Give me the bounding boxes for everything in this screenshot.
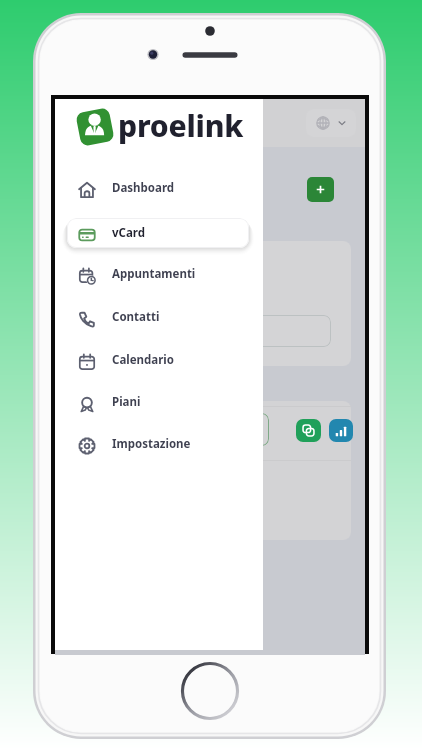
button[interactable]: Copy: [296, 419, 321, 442]
button[interactable]: Language: [306, 109, 356, 137]
button[interactable]: vCard: [67, 218, 249, 248]
staticText: Piani: [112, 394, 141, 410]
button[interactable]: Contatti: [67, 302, 249, 332]
staticText: proelink: [118, 105, 244, 146]
staticText: Appuntamenti: [112, 266, 196, 282]
button[interactable]: Impostazione: [67, 429, 249, 459]
button[interactable]: Piani: [67, 387, 249, 417]
staticText: Calendario: [112, 352, 174, 368]
button[interactable]: Dashboard: [67, 173, 249, 203]
button[interactable]: Calendario: [67, 345, 249, 375]
button[interactable]: Statistics: [329, 419, 353, 442]
staticText: vCard: [112, 225, 146, 241]
button[interactable]: Appuntamenti: [67, 259, 249, 289]
staticText: Impostazione: [112, 436, 191, 452]
staticText: Contatti: [112, 309, 160, 325]
staticText: Dashboard: [112, 180, 175, 196]
button[interactable]: Add: [307, 177, 334, 202]
